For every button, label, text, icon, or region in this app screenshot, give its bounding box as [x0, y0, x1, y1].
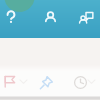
button[interactable]: Chat: [75, 7, 96, 28]
button[interactable]: Pin: [39, 75, 53, 89]
button[interactable]: Expand recent: [86, 76, 97, 87]
button[interactable]: Account: [40, 7, 61, 28]
button[interactable]: Flag: [3, 75, 16, 88]
button[interactable]: Help: [0, 6, 21, 27]
button[interactable]: Recent: [73, 75, 87, 89]
